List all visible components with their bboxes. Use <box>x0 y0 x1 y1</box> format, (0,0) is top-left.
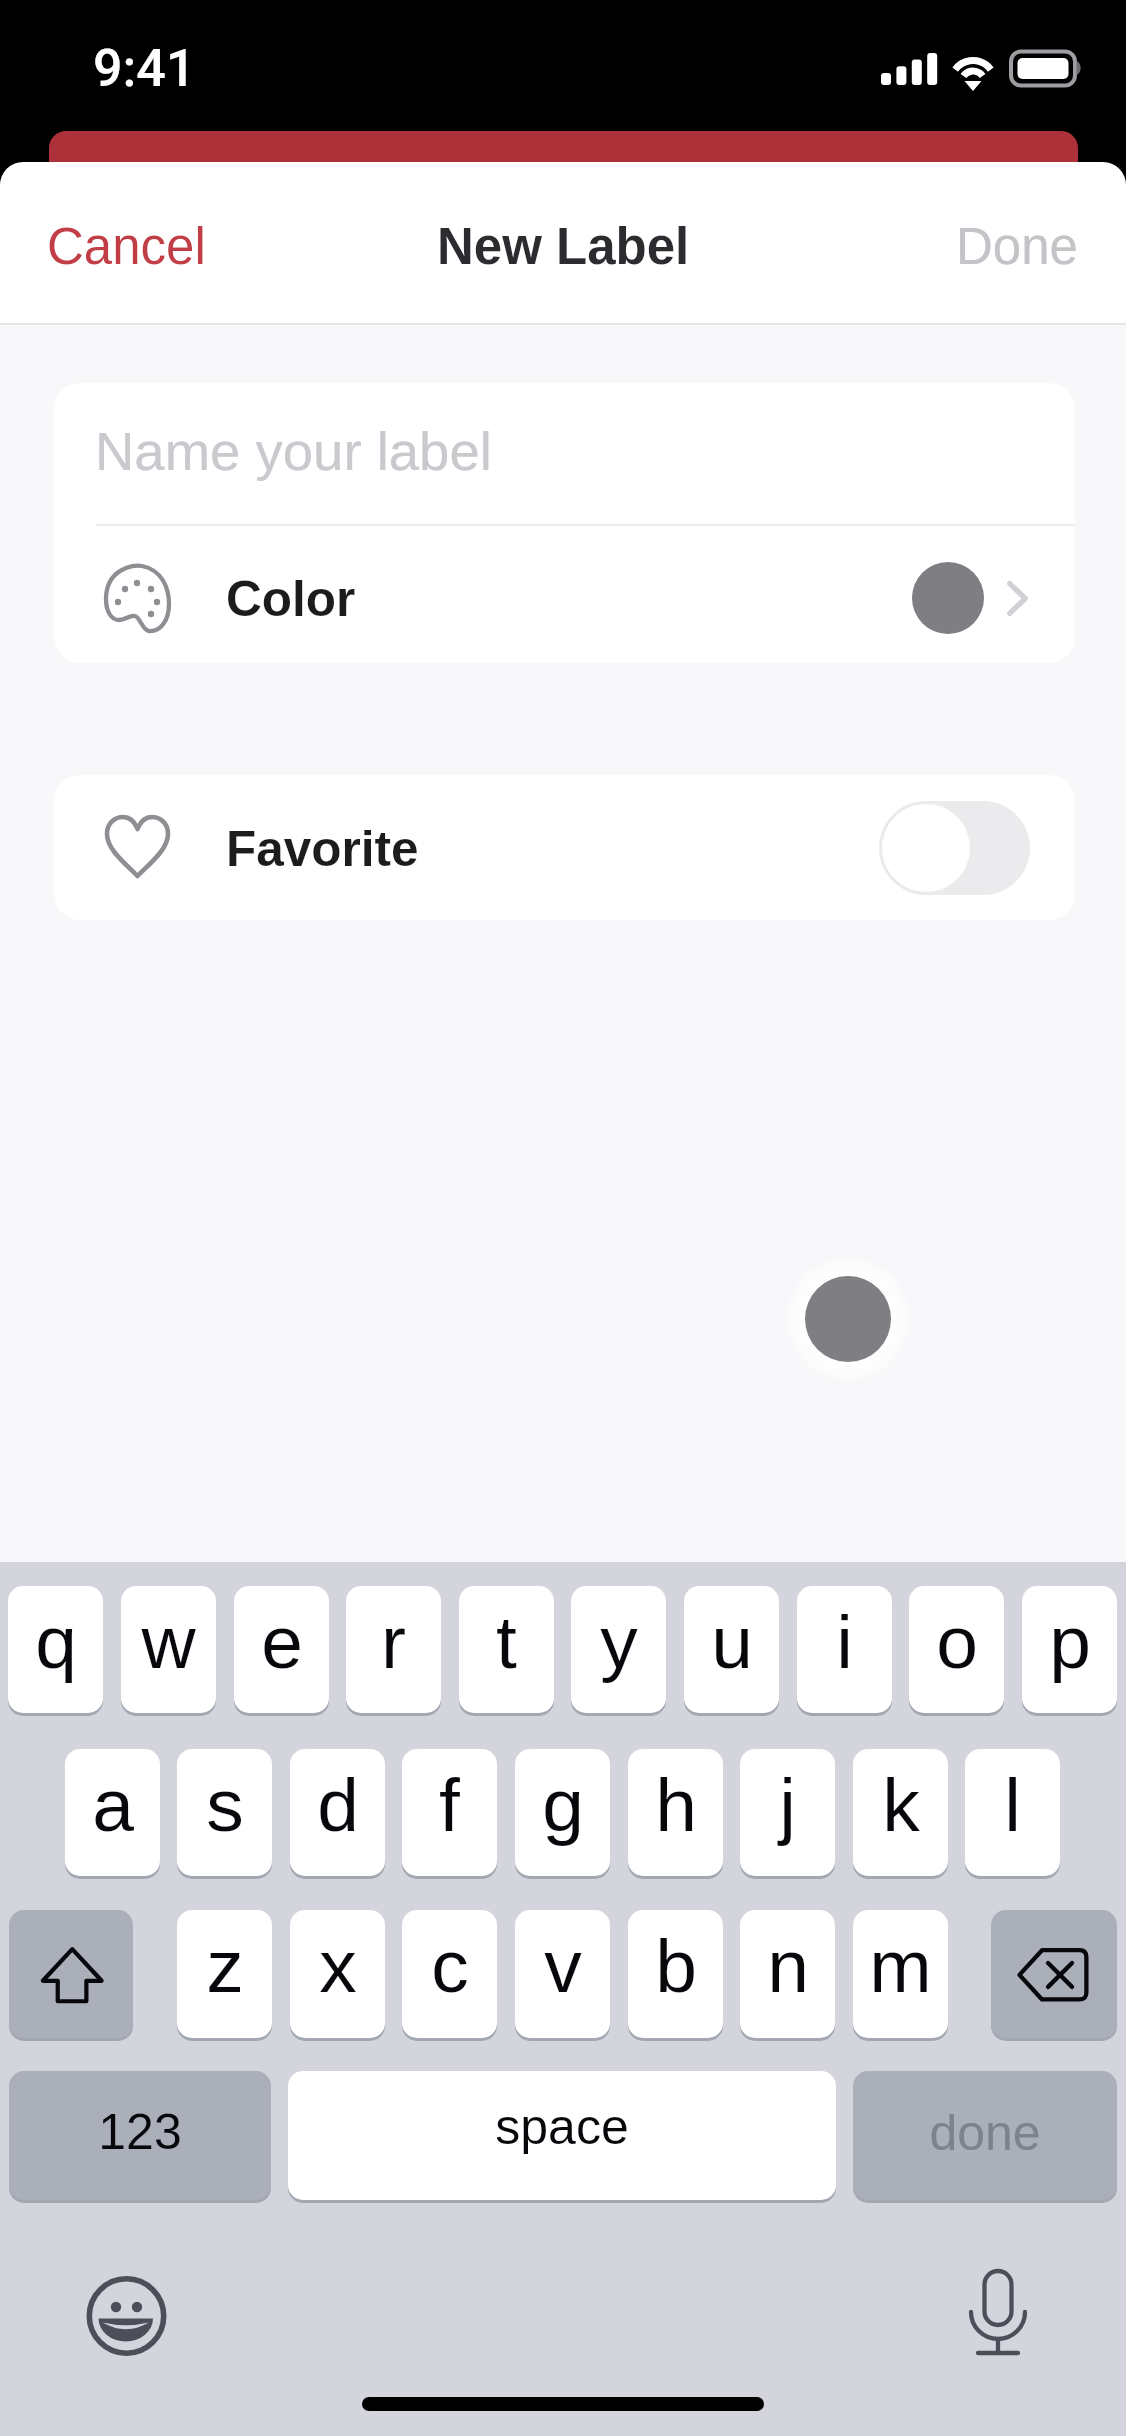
button[interactable]: p <box>1022 1586 1117 1713</box>
button[interactable]: Name your label <box>54 383 1075 524</box>
staticText: y <box>600 1600 638 1684</box>
staticText: z <box>206 1924 244 2008</box>
button[interactable]: g <box>515 1749 610 1876</box>
staticText: l <box>1004 1763 1021 1847</box>
staticText: f <box>439 1763 460 1847</box>
button[interactable]: z <box>177 1910 272 2038</box>
button[interactable]: v <box>515 1910 610 2038</box>
button[interactable]: Dictation <box>969 2270 1027 2355</box>
staticText: j <box>779 1763 796 1847</box>
staticText: k <box>882 1763 920 1847</box>
staticText: x <box>319 1924 357 2008</box>
staticText: a <box>92 1763 134 1847</box>
staticText: r <box>381 1600 406 1684</box>
button[interactable]: i <box>797 1586 892 1713</box>
button[interactable]: Backspace <box>991 1910 1117 2038</box>
staticText: w <box>141 1600 196 1684</box>
staticText: done <box>929 2105 1041 2161</box>
button[interactable]: j <box>740 1749 835 1876</box>
button[interactable]: a <box>65 1749 160 1876</box>
staticText: b <box>655 1924 697 2008</box>
button[interactable]: q <box>8 1586 103 1713</box>
button[interactable]: Favorite <box>54 775 1075 920</box>
button[interactable]: s <box>177 1749 272 1876</box>
button[interactable]: 123 <box>9 2071 271 2200</box>
staticText: Favorite <box>226 821 419 876</box>
button[interactable]: Color <box>54 526 1075 663</box>
staticText: Name your label <box>95 421 492 482</box>
button[interactable]: m <box>853 1910 948 2038</box>
button[interactable]: space <box>288 2071 836 2200</box>
staticText: s <box>206 1763 244 1847</box>
button[interactable]: k <box>853 1749 948 1876</box>
staticText: 9:41 <box>93 38 196 99</box>
button[interactable]: Emoji keyboard <box>86 2276 167 2357</box>
staticText: t <box>496 1600 517 1684</box>
staticText: p <box>1049 1600 1091 1684</box>
staticText: v <box>544 1924 582 2008</box>
staticText: g <box>542 1763 584 1847</box>
staticText: q <box>35 1600 77 1684</box>
button[interactable]: o <box>909 1586 1004 1713</box>
button[interactable]: Cancel <box>14 191 239 301</box>
staticText: space <box>495 2099 629 2155</box>
button[interactable]: y <box>571 1586 666 1713</box>
button[interactable]: Done <box>904 191 1126 301</box>
button[interactable]: x <box>290 1910 385 2038</box>
button[interactable]: done <box>853 2071 1117 2200</box>
staticText: u <box>711 1600 753 1684</box>
button[interactable]: l <box>965 1749 1060 1876</box>
button[interactable]: c <box>402 1910 497 2038</box>
staticText: e <box>261 1600 303 1684</box>
button[interactable]: h <box>628 1749 723 1876</box>
staticText: c <box>431 1924 469 2008</box>
button[interactable]: d <box>290 1749 385 1876</box>
staticText: d <box>317 1763 359 1847</box>
staticText: i <box>836 1600 853 1684</box>
button[interactable]: Shift <box>9 1910 133 2038</box>
staticText: Color <box>226 571 356 626</box>
staticText: Done <box>956 218 1078 275</box>
staticText: o <box>936 1600 978 1684</box>
button[interactable]: e <box>234 1586 329 1713</box>
staticText: Cancel <box>47 218 206 275</box>
button[interactable]: t <box>459 1586 554 1713</box>
button[interactable]: r <box>346 1586 441 1713</box>
button[interactable]: f <box>402 1749 497 1876</box>
button[interactable]: u <box>684 1586 779 1713</box>
staticText: 123 <box>98 2104 182 2160</box>
staticText: h <box>655 1763 697 1847</box>
staticText: n <box>767 1924 809 2008</box>
button[interactable]: b <box>628 1910 723 2038</box>
staticText: m <box>869 1924 932 2008</box>
staticText: New Label <box>437 218 690 275</box>
button[interactable]: w <box>121 1586 216 1713</box>
button[interactable]: n <box>740 1910 835 2038</box>
